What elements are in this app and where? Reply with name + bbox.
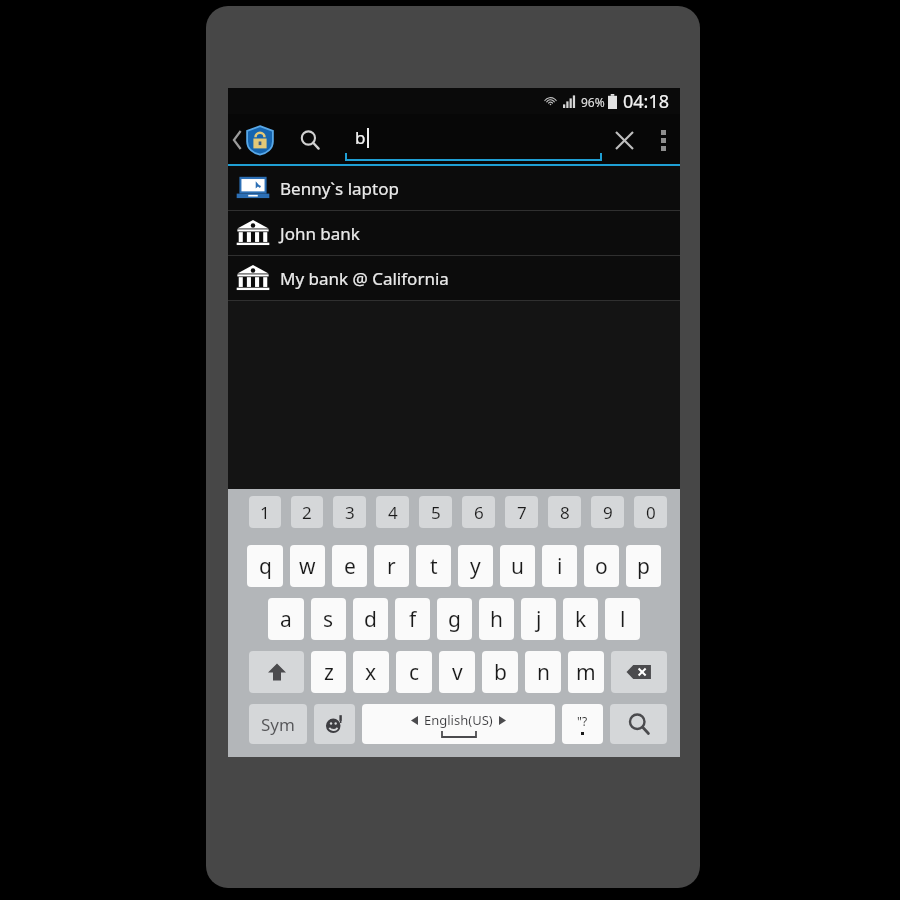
button[interactable]: n [525,651,561,693]
staticText: a [280,605,292,634]
button[interactable]: Up [228,114,279,166]
button[interactable]: q [247,545,283,587]
staticText: i [557,552,563,581]
button[interactable]: u [500,545,535,587]
button[interactable]: 4 [376,496,409,528]
staticText: b [355,126,366,149]
button[interactable]: My bank @ California [228,256,680,300]
staticText: 3 [345,501,355,524]
button[interactable]: 9 [591,496,624,528]
staticText: u [511,552,524,581]
button[interactable]: Period [562,704,603,744]
button[interactable]: 8 [548,496,581,528]
staticText: 5 [431,501,441,524]
button[interactable]: m [568,651,604,693]
staticText: h [490,605,503,634]
staticText: "? [577,713,588,729]
staticText: q [259,552,272,581]
button[interactable]: Sym [249,704,307,744]
staticText: n [537,658,550,687]
button[interactable]: c [396,651,432,693]
staticText: English(US) [424,711,493,729]
button[interactable]: b [345,114,602,166]
button[interactable]: More options [646,114,680,166]
button[interactable]: 7 [505,496,538,528]
button[interactable]: p [626,545,661,587]
button[interactable]: Benny`s laptop [228,166,680,210]
button[interactable]: t [416,545,451,587]
button[interactable]: x [353,651,389,693]
button[interactable]: 1 [249,496,281,528]
button[interactable]: f [395,598,430,640]
button[interactable]: g [437,598,472,640]
staticText: t [430,552,438,581]
staticText: s [323,605,334,634]
button[interactable]: 5 [419,496,452,528]
button[interactable]: j [521,598,556,640]
button[interactable]: Search [295,125,325,155]
staticText: Sym [261,713,295,736]
button[interactable]: s [311,598,346,640]
button[interactable]: h [479,598,514,640]
staticText: My bank @ California [280,267,449,290]
staticText: r [387,552,396,581]
button[interactable]: w [290,545,325,587]
staticText: l [620,605,626,634]
button[interactable]: d [353,598,388,640]
button[interactable]: John bank [228,211,680,255]
button[interactable]: z [311,651,346,693]
button[interactable]: Backspace [611,651,667,693]
button[interactable]: o [584,545,619,587]
staticText: v [452,658,463,687]
staticText: 04:18 [623,89,670,114]
button[interactable]: b [482,651,518,693]
staticText: Benny`s laptop [280,177,399,200]
button[interactable]: Space [362,704,555,744]
staticText: b [494,658,507,687]
button[interactable]: 6 [462,496,495,528]
button[interactable]: 3 [333,496,366,528]
staticText: y [470,552,481,581]
button[interactable]: Search [610,704,667,744]
staticText: j [536,605,542,634]
staticText: m [576,658,596,687]
button[interactable]: k [563,598,598,640]
staticText: 7 [517,501,527,524]
staticText: z [324,658,334,687]
button[interactable]: Emoji and voice input [314,704,355,744]
button[interactable]: e [332,545,367,587]
staticText: k [575,605,587,634]
staticText: 4 [388,501,398,524]
button[interactable]: Clear [602,118,646,162]
button[interactable]: 2 [291,496,323,528]
button[interactable]: y [458,545,493,587]
button[interactable]: i [542,545,577,587]
staticText: p [637,552,650,581]
staticText: 96% [581,94,605,110]
staticText: f [409,605,417,634]
staticText: 2 [302,501,312,524]
button[interactable]: r [374,545,409,587]
staticText: 9 [603,501,613,524]
staticText: w [299,552,316,581]
button[interactable]: v [439,651,475,693]
staticText: d [364,605,377,634]
staticText: John bank [280,222,360,245]
button[interactable]: Shift [249,651,304,693]
staticText: g [448,605,461,634]
staticText: x [365,658,377,687]
button[interactable]: 0 [634,496,667,528]
button[interactable]: l [605,598,640,640]
staticText: 8 [560,501,570,524]
staticText: o [595,552,608,581]
button[interactable]: a [268,598,304,640]
staticText: c [409,658,420,687]
staticText: 6 [474,501,484,524]
staticText: e [344,552,356,581]
staticText: 0 [646,501,656,524]
staticText: 1 [260,501,270,524]
